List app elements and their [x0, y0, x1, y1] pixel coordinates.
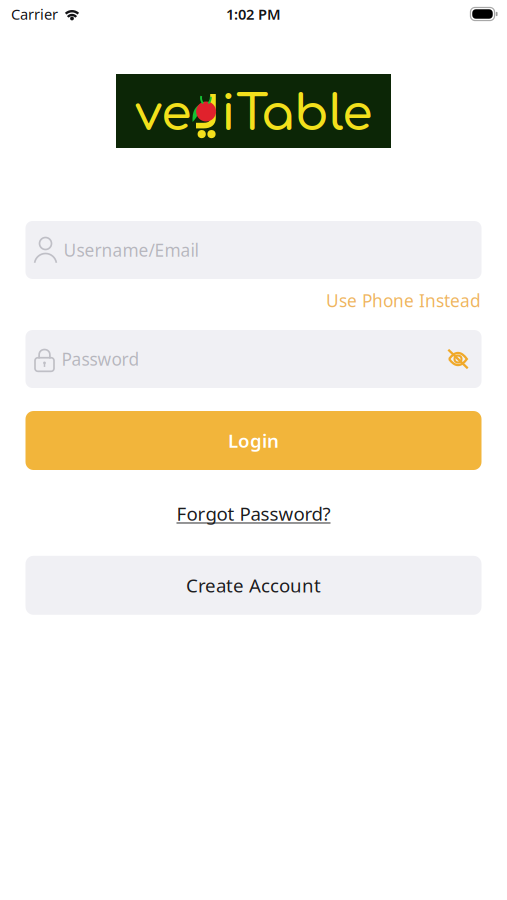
button[interactable]: Username/Email	[25, 221, 481, 279]
staticText: Carrier	[11, 4, 58, 24]
staticText: Create Account	[186, 573, 321, 598]
button[interactable]: Create Account	[25, 556, 481, 615]
staticText: ve	[135, 86, 191, 141]
staticText: Use Phone Instead	[326, 289, 481, 312]
button[interactable]: Show password	[447, 348, 468, 369]
staticText: iTable	[221, 86, 372, 141]
staticText: Username/Email	[63, 238, 198, 261]
button[interactable]: Use Phone Instead	[326, 285, 481, 316]
staticText: Forgot Password?	[176, 501, 330, 526]
button[interactable]: Login	[25, 411, 481, 470]
button[interactable]: Forgot Password?	[168, 496, 338, 531]
button[interactable]: Password	[25, 330, 481, 388]
staticText: Login	[228, 428, 279, 453]
staticText: Password	[61, 347, 139, 370]
staticText: 1:02 PM	[226, 4, 281, 24]
